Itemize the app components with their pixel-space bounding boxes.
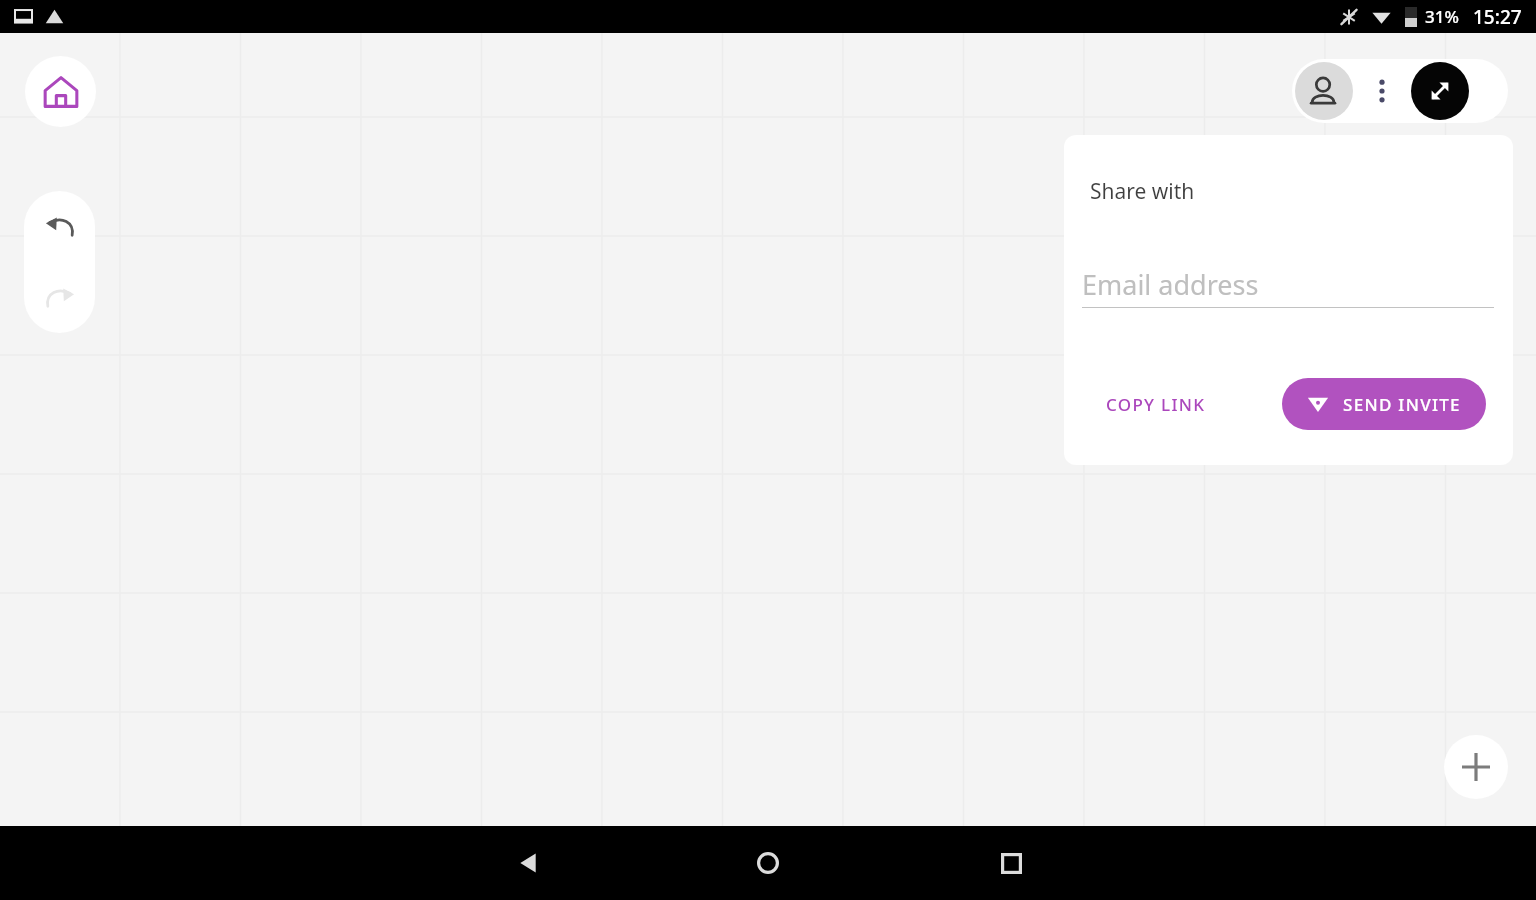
staticText: COPY LINK bbox=[1106, 393, 1206, 416]
button[interactable]: COPY LINK bbox=[1090, 383, 1222, 426]
staticText: Email address bbox=[1082, 266, 1259, 303]
button[interactable]: Back bbox=[508, 826, 548, 900]
button[interactable]: Home bbox=[25, 56, 96, 127]
staticText: 15:27 bbox=[1473, 4, 1522, 30]
button[interactable]: Add person bbox=[1295, 62, 1353, 120]
button[interactable]: Undo bbox=[24, 191, 95, 262]
button[interactable]: Expand bbox=[1411, 62, 1469, 120]
button[interactable]: SEND INVITE bbox=[1282, 378, 1486, 430]
button[interactable]: Add bbox=[1444, 735, 1508, 799]
staticText: SEND INVITE bbox=[1343, 393, 1461, 416]
staticText: Share with bbox=[1090, 177, 1195, 206]
button[interactable]: More options bbox=[1353, 62, 1411, 120]
button[interactable]: Recents bbox=[991, 826, 1031, 900]
button[interactable]: Home bbox=[748, 826, 788, 900]
staticText: 31% bbox=[1425, 5, 1459, 28]
button[interactable]: Redo bbox=[24, 262, 95, 333]
